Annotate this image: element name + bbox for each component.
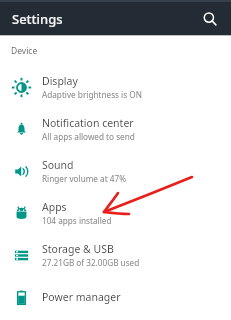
staticText: Sound (42, 158, 74, 172)
button[interactable]: Apps (0, 192, 231, 234)
button[interactable]: Storage & USB (0, 234, 231, 276)
staticText: All apps allowed to send (42, 131, 135, 142)
staticText: Power manager (42, 290, 121, 304)
button[interactable]: Display (0, 66, 231, 108)
staticText: Settings (12, 10, 63, 28)
button[interactable]: Notification center (0, 108, 231, 150)
staticText: 104 apps installed (42, 215, 112, 226)
staticText: Notification center (42, 116, 134, 130)
staticText: 27.21GB of 32.00GB used (42, 257, 140, 268)
button[interactable]: Search (197, 6, 223, 32)
staticText: Ringer volume at 47% (42, 173, 126, 184)
button[interactable]: Sound (0, 150, 231, 192)
staticText: Storage & USB (42, 242, 114, 256)
staticText: Apps (42, 200, 67, 214)
staticText: Adaptive brightness is ON (42, 89, 142, 100)
button[interactable]: Power manager (0, 276, 231, 318)
staticText: Display (42, 74, 78, 88)
staticText: Device (11, 45, 38, 57)
